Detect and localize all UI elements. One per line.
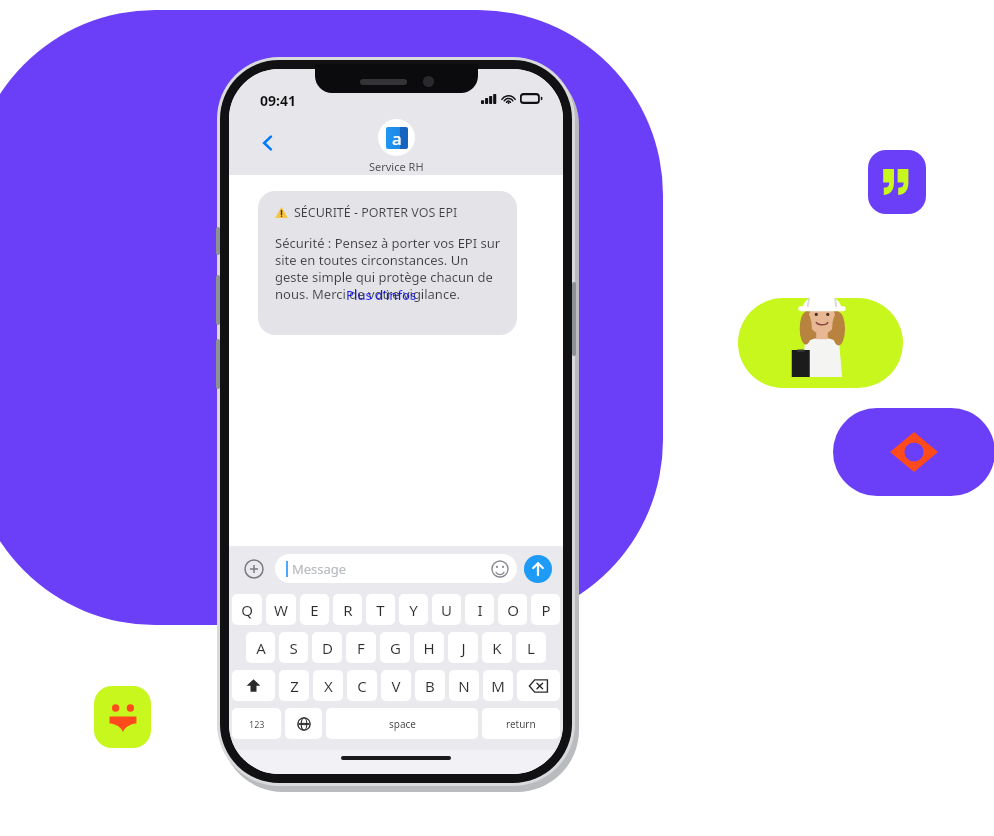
- button[interactable]: F: [346, 632, 376, 663]
- staticText: L: [527, 638, 535, 658]
- button[interactable]: S: [279, 632, 308, 663]
- button[interactable]: R: [333, 594, 362, 625]
- staticText: N: [458, 676, 470, 696]
- button[interactable]: H: [414, 632, 444, 663]
- button[interactable]: Diamond: [833, 408, 994, 496]
- staticText: V: [391, 676, 401, 696]
- staticText: C: [357, 676, 367, 696]
- button[interactable]: L: [516, 632, 546, 663]
- button[interactable]: Message: [275, 554, 517, 583]
- button[interactable]: X: [313, 670, 343, 701]
- staticText: Sécurité : Pensez à porter vos EPI sur s…: [275, 234, 503, 303]
- button[interactable]: Quote: [868, 150, 926, 214]
- button[interactable]: a: [369, 119, 424, 174]
- button[interactable]: Add attachment: [240, 555, 268, 583]
- staticText: H: [423, 638, 435, 658]
- staticText: Q: [241, 600, 253, 620]
- button[interactable]: Emoji: [491, 560, 509, 578]
- staticText: return: [506, 717, 536, 731]
- button[interactable]: M: [483, 670, 513, 701]
- staticText: a: [392, 127, 402, 149]
- staticText: Y: [409, 600, 418, 620]
- staticText: space: [389, 717, 416, 731]
- staticText: S: [289, 638, 298, 658]
- button[interactable]: Plus d’infos: [346, 286, 417, 304]
- button[interactable]: Y: [399, 594, 428, 625]
- staticText: G: [390, 638, 401, 658]
- staticText: Service RH: [369, 159, 424, 174]
- staticText: P: [541, 600, 551, 620]
- button[interactable]: Q: [232, 594, 262, 625]
- staticText: O: [507, 600, 519, 620]
- button[interactable]: B: [415, 670, 445, 701]
- staticText: W: [274, 600, 288, 620]
- button[interactable]: Key: [517, 670, 560, 701]
- button[interactable]: J: [448, 632, 478, 663]
- staticText: I: [477, 600, 483, 620]
- staticText: D: [322, 638, 333, 658]
- staticText: J: [461, 638, 466, 658]
- button[interactable]: D: [312, 632, 342, 663]
- button[interactable]: Send: [524, 555, 552, 583]
- staticText: E: [310, 600, 319, 620]
- button[interactable]: I: [465, 594, 494, 625]
- staticText: K: [492, 638, 502, 658]
- button[interactable]: N: [449, 670, 479, 701]
- button[interactable]: Change language: [285, 708, 322, 739]
- button[interactable]: Key: [232, 670, 275, 701]
- staticText: SÉCURITÉ - PORTER VOS EPI: [294, 204, 458, 221]
- staticText: U: [441, 600, 452, 620]
- staticText: B: [425, 676, 435, 696]
- staticText: T: [376, 600, 385, 620]
- button[interactable]: Back: [251, 126, 285, 160]
- staticText: A: [256, 638, 266, 658]
- button[interactable]: U: [432, 594, 461, 625]
- button[interactable]: C: [347, 670, 377, 701]
- button[interactable]: space: [326, 708, 478, 739]
- staticText: X: [324, 676, 333, 696]
- button[interactable]: Worker: [738, 298, 903, 388]
- button[interactable]: K: [482, 632, 512, 663]
- button[interactable]: Z: [279, 670, 309, 701]
- button[interactable]: A: [246, 632, 275, 663]
- staticText: Message: [292, 560, 347, 578]
- button[interactable]: T: [366, 594, 395, 625]
- button[interactable]: W: [266, 594, 296, 625]
- staticText: M: [491, 676, 505, 696]
- button[interactable]: O: [498, 594, 527, 625]
- button[interactable]: SÉCURITÉ - PORTER VOS EPI: [258, 191, 517, 335]
- staticText: F: [357, 638, 365, 658]
- button[interactable]: E: [300, 594, 329, 625]
- button[interactable]: return: [482, 708, 560, 739]
- button[interactable]: 123: [232, 708, 281, 739]
- button[interactable]: V: [381, 670, 411, 701]
- staticText: Z: [290, 676, 299, 696]
- staticText: 09:41: [260, 91, 296, 110]
- button[interactable]: G: [380, 632, 410, 663]
- staticText: R: [343, 600, 353, 620]
- staticText: 123: [249, 718, 265, 730]
- button[interactable]: P: [531, 594, 560, 625]
- button[interactable]: Community: [94, 686, 151, 748]
